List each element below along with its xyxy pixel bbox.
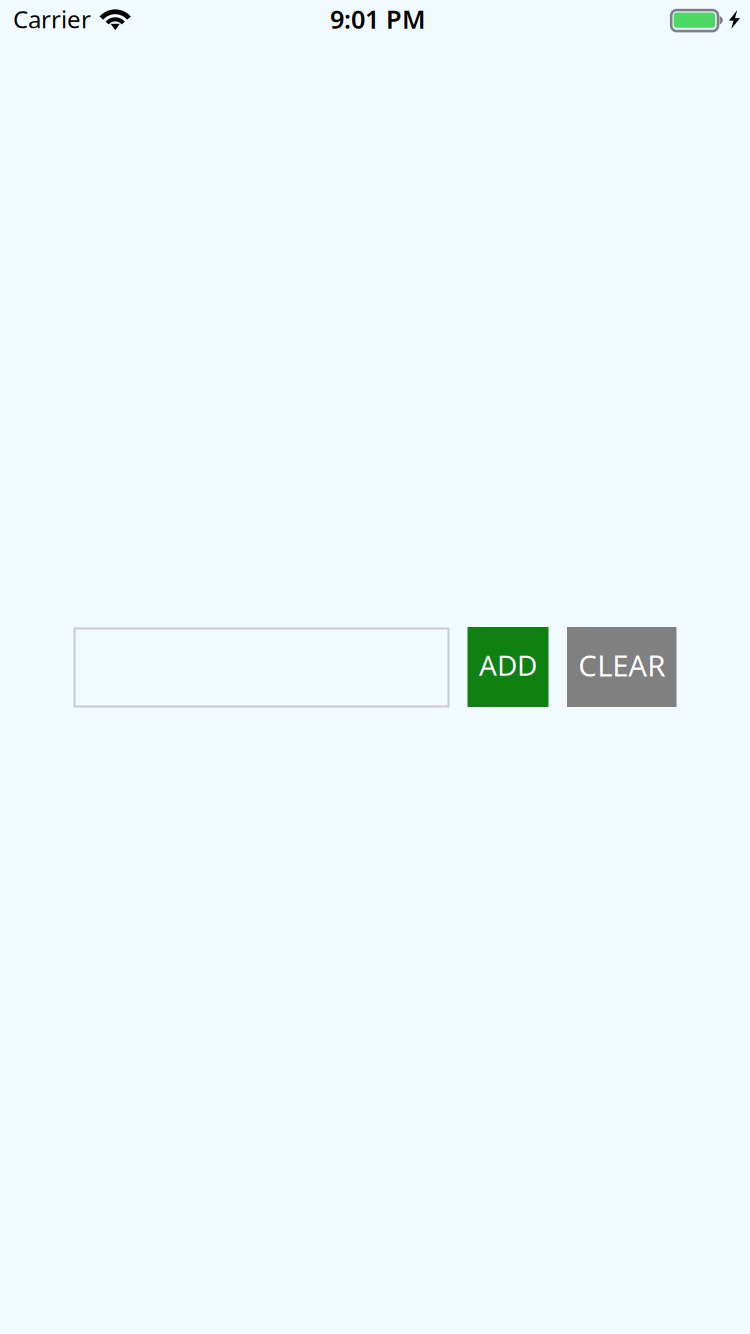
staticText: Carrier xyxy=(13,3,91,35)
staticText: CLEAR xyxy=(578,645,665,684)
button[interactable]: CLEAR xyxy=(567,627,676,707)
staticText: 9:01 PM xyxy=(330,2,426,36)
button[interactable]: New item text field xyxy=(74,628,448,706)
staticText: ADD xyxy=(479,646,537,684)
button[interactable]: ADD xyxy=(467,627,548,707)
